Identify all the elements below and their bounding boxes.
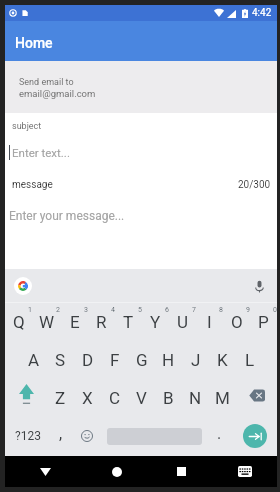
button[interactable]: O [223,303,250,341]
staticText: X [82,388,93,408]
button[interactable]: Q [5,303,33,341]
staticText: L [245,350,255,370]
staticText: B [163,388,174,408]
staticText: O [231,312,243,332]
button[interactable]: R [88,303,115,341]
button[interactable]: H [155,341,182,379]
staticText: S [55,350,66,370]
staticText: 0 [273,306,277,314]
staticText: N [189,388,202,408]
staticText: T [123,312,134,332]
button[interactable]: D [74,341,101,379]
button[interactable]: , [50,417,72,455]
staticText: 20/300 [238,179,271,191]
staticText: subject [12,121,42,132]
staticText: email@gmail.com [19,88,96,99]
staticText: message [12,179,53,191]
button[interactable]: Home [5,21,277,61]
staticText: V [136,388,147,408]
staticText: 8 [219,306,223,314]
button[interactable]: P [250,303,277,341]
button[interactable]: V [128,379,155,417]
staticText: R [96,312,107,332]
staticText: C [109,388,121,408]
button[interactable]: Emoji [72,417,102,455]
staticText: F [110,350,120,370]
staticText: 4 [111,306,115,314]
button[interactable]: ?123 [5,417,50,455]
button[interactable]: U [169,303,196,341]
button[interactable]: L [236,341,263,379]
staticText: P [258,312,269,332]
staticText: 9 [246,306,250,314]
staticText: K [217,350,228,370]
staticText: Z [55,388,66,408]
staticText: . [217,424,222,443]
staticText: Q [13,312,25,332]
button[interactable]: Recent apps [149,456,213,487]
staticText: Enter text... [12,146,70,159]
button[interactable]: Send [232,417,277,455]
button[interactable]: Backspace [236,379,277,417]
staticText: 6 [165,306,169,314]
button[interactable]: . [207,417,232,455]
staticText: Y [150,312,161,332]
button[interactable]: X [74,379,101,417]
button[interactable]: J [182,341,209,379]
staticText: 3 [84,306,88,314]
staticText: 4:42 [252,7,272,19]
button[interactable]: I [196,303,223,341]
staticText: , [59,424,63,443]
staticText: W [39,312,55,332]
button[interactable]: G [128,341,155,379]
staticText: J [191,350,201,370]
button[interactable]: Shift [5,379,47,417]
button[interactable]: F [101,341,128,379]
button[interactable]: M [209,379,236,417]
button[interactable]: Y [142,303,169,341]
button[interactable]: Hide keyboard [213,456,277,487]
button[interactable]: E [61,303,88,341]
staticText: Home [15,35,53,51]
staticText: Enter your message... [9,209,125,223]
button[interactable]: Home [85,456,149,487]
staticText: G [136,350,148,370]
button[interactable]: Back [5,456,85,487]
button[interactable]: C [101,379,128,417]
staticText: ?123 [15,429,41,443]
button[interactable]: Space [102,417,207,455]
staticText: E [70,312,80,332]
button[interactable]: Google search [14,277,32,295]
button[interactable]: N [182,379,209,417]
button[interactable]: A [20,341,47,379]
button[interactable]: B [155,379,182,417]
button[interactable]: S [47,341,74,379]
button[interactable]: W [33,303,61,341]
button[interactable]: Z [47,379,74,417]
button[interactable]: T [115,303,142,341]
staticText: H [162,350,175,370]
staticText: 7 [192,306,196,314]
button[interactable]: Voice input [250,277,268,295]
button[interactable]: K [209,341,236,379]
staticText: 5 [138,306,142,314]
staticText: M [215,388,230,408]
staticText: U [177,312,189,332]
staticText: Send email to [19,77,74,88]
staticText: 2 [56,306,60,314]
staticText: D [82,350,94,370]
staticText: A [28,350,40,370]
staticText: 1 [28,306,32,314]
staticText: I [207,312,212,332]
